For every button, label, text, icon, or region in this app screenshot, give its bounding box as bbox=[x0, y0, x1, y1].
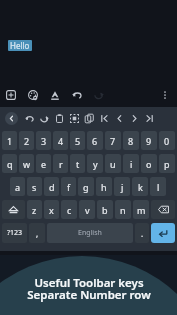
button[interactable]: . bbox=[135, 223, 149, 243]
button[interactable]: 6 bbox=[87, 131, 103, 150]
button[interactable]: v bbox=[79, 200, 95, 219]
button[interactable]: p bbox=[159, 154, 175, 173]
button[interactable]: 4 bbox=[53, 131, 68, 150]
button[interactable]: Undo bbox=[22, 107, 37, 129]
staticText: 5 bbox=[75, 135, 81, 147]
staticText: 3 bbox=[41, 135, 47, 147]
staticText: j bbox=[121, 181, 124, 193]
button[interactable]: g bbox=[78, 177, 94, 196]
button[interactable]: y bbox=[87, 154, 103, 173]
staticText: k bbox=[138, 181, 143, 193]
staticText: ?123 bbox=[7, 228, 23, 238]
button[interactable]: Move to end bbox=[142, 107, 157, 129]
button[interactable]: Redo bbox=[88, 83, 110, 107]
button[interactable]: a bbox=[10, 177, 25, 196]
staticText: x bbox=[49, 204, 54, 216]
button[interactable]: s bbox=[27, 177, 42, 196]
button[interactable]: 5 bbox=[70, 131, 85, 150]
button[interactable]: k bbox=[132, 177, 148, 196]
staticText: w bbox=[23, 158, 31, 170]
button[interactable]: Move to start bbox=[97, 107, 112, 129]
staticText: 6 bbox=[92, 135, 98, 147]
button[interactable]: Select all bbox=[67, 107, 82, 129]
staticText: Hello bbox=[10, 40, 30, 51]
button[interactable]: 1 bbox=[2, 131, 17, 150]
button[interactable]: 2 bbox=[19, 131, 34, 150]
staticText: a bbox=[15, 181, 21, 193]
staticText: i bbox=[130, 158, 133, 170]
staticText: 9 bbox=[146, 135, 152, 147]
staticText: 0 bbox=[164, 135, 170, 147]
staticText: g bbox=[83, 181, 89, 193]
staticText: q bbox=[7, 158, 13, 170]
staticText: h bbox=[101, 181, 107, 193]
staticText: . bbox=[141, 228, 144, 239]
button[interactable]: d bbox=[44, 177, 59, 196]
button[interactable]: English bbox=[47, 223, 133, 243]
button[interactable]: f bbox=[61, 177, 76, 196]
button[interactable]: o bbox=[141, 154, 157, 173]
staticText: 8 bbox=[128, 135, 134, 147]
staticText: d bbox=[49, 181, 55, 193]
button[interactable]: , bbox=[29, 223, 45, 243]
staticText: 4 bbox=[58, 135, 64, 147]
button[interactable]: x bbox=[44, 200, 59, 219]
staticText: s bbox=[32, 181, 37, 193]
button[interactable]: Paste bbox=[52, 107, 67, 129]
button[interactable]: q bbox=[2, 154, 17, 173]
staticText: 7 bbox=[110, 135, 116, 147]
staticText: e bbox=[41, 158, 47, 170]
staticText: z bbox=[32, 204, 37, 216]
button[interactable]: Enter bbox=[151, 223, 175, 243]
button[interactable]: 9 bbox=[141, 131, 157, 150]
staticText: b bbox=[102, 204, 108, 216]
button[interactable]: Move left bbox=[112, 107, 127, 129]
button[interactable]: b bbox=[97, 200, 113, 219]
staticText: , bbox=[36, 228, 39, 239]
staticText: Useful Toolbar keys Separate Number row bbox=[27, 275, 151, 303]
button[interactable]: m bbox=[133, 200, 149, 219]
button[interactable]: 7 bbox=[105, 131, 121, 150]
staticText: r bbox=[59, 158, 63, 170]
button[interactable]: Close toolbar bbox=[0, 107, 22, 129]
button[interactable]: Text formatting bbox=[44, 83, 66, 107]
button[interactable]: Shift bbox=[2, 200, 25, 219]
button[interactable]: More options bbox=[156, 83, 174, 107]
button[interactable]: e bbox=[36, 154, 51, 173]
staticText: o bbox=[146, 158, 152, 170]
staticText: n bbox=[120, 204, 126, 216]
staticText: v bbox=[85, 204, 90, 216]
button[interactable]: u bbox=[105, 154, 121, 173]
button[interactable]: w bbox=[19, 154, 34, 173]
staticText: 2 bbox=[24, 135, 30, 147]
button[interactable]: h bbox=[96, 177, 112, 196]
button[interactable]: ?123 bbox=[2, 223, 27, 243]
button[interactable]: Keyboard layouts bbox=[0, 83, 22, 107]
button[interactable]: Hello bbox=[10, 40, 30, 51]
button[interactable]: c bbox=[61, 200, 77, 219]
button[interactable]: Redo bbox=[37, 107, 52, 129]
button[interactable]: Copy bbox=[82, 107, 97, 129]
button[interactable]: 3 bbox=[36, 131, 51, 150]
staticText: p bbox=[164, 158, 170, 170]
button[interactable]: r bbox=[53, 154, 68, 173]
button[interactable]: l bbox=[150, 177, 166, 196]
button[interactable]: 8 bbox=[123, 131, 139, 150]
staticText: y bbox=[93, 158, 98, 170]
button[interactable]: Backspace bbox=[151, 200, 175, 219]
button[interactable]: z bbox=[27, 200, 42, 219]
button[interactable]: 0 bbox=[159, 131, 175, 150]
staticText: l bbox=[157, 181, 160, 193]
staticText: c bbox=[67, 204, 72, 216]
button[interactable]: j bbox=[114, 177, 130, 196]
staticText: t bbox=[76, 158, 80, 170]
staticText: m bbox=[137, 204, 146, 216]
button[interactable]: t bbox=[70, 154, 85, 173]
staticText: 1 bbox=[7, 135, 13, 147]
button[interactable]: n bbox=[115, 200, 131, 219]
staticText: f bbox=[67, 181, 71, 193]
button[interactable]: Undo bbox=[66, 83, 88, 107]
button[interactable]: Move right bbox=[127, 107, 142, 129]
button[interactable]: i bbox=[123, 154, 139, 173]
button[interactable]: Theme bbox=[22, 83, 44, 107]
